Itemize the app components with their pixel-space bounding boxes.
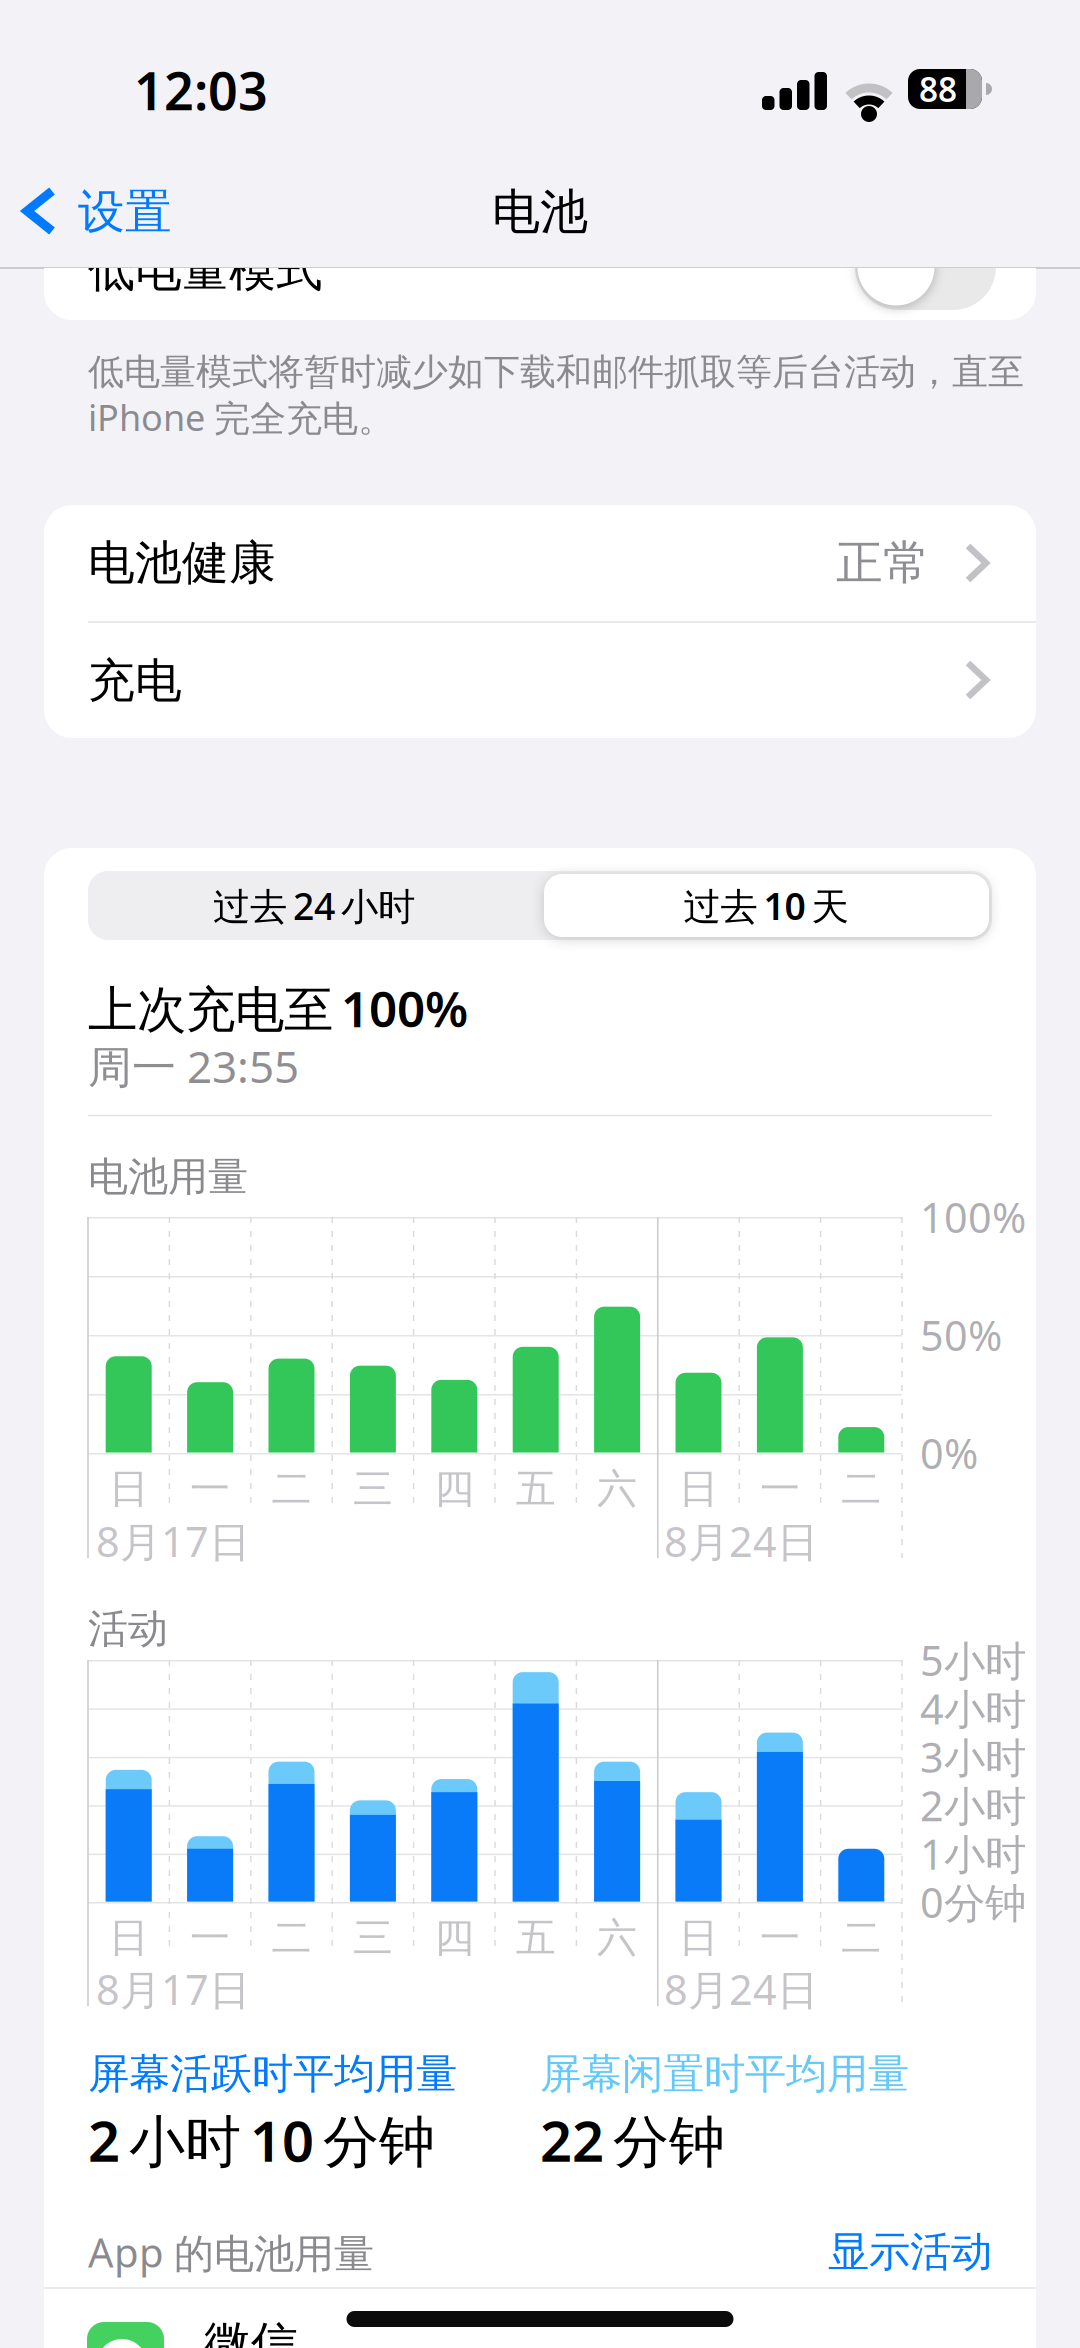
staticText: 电池 (492, 182, 588, 241)
staticText: 低电量模式 (88, 241, 323, 299)
staticText: 四 (434, 1913, 474, 1962)
staticText: 1小时 (920, 1826, 1026, 1881)
staticText: 0分钟 (920, 1875, 1026, 1929)
staticText: 二 (841, 1913, 881, 1962)
staticText: 五 (516, 1464, 556, 1513)
staticText: 3小时 (920, 1729, 1026, 1784)
staticText: 日 (678, 1464, 718, 1513)
staticText: 4小时 (920, 1681, 1026, 1736)
button[interactable]: 充电 (44, 623, 1036, 738)
button[interactable]: 显示活动 (692, 2227, 992, 2277)
staticText: 六 (597, 1464, 637, 1513)
staticText: 88 (919, 67, 957, 111)
staticText: 8月17日 (96, 1962, 250, 2016)
staticText: 过去 10 天 (683, 881, 848, 930)
staticText: 22 分钟 (540, 2103, 725, 2177)
staticText: 8月24日 (664, 1962, 818, 2016)
staticText: 屏幕活跃时平均用量 (88, 2049, 457, 2099)
button[interactable]: 微信 (44, 2288, 1036, 2348)
staticText: 日 (109, 1913, 149, 1962)
staticText: 一 (190, 1913, 230, 1962)
staticText: 一 (760, 1913, 800, 1962)
staticText: 活动 (88, 1604, 168, 1653)
staticText: 一 (760, 1464, 800, 1513)
staticText: 电池用量 (88, 1152, 248, 1201)
staticText: 过去 24 小时 (213, 881, 415, 930)
staticText: 二 (841, 1464, 881, 1513)
staticText: 0% (920, 1426, 978, 1480)
staticText: 一 (190, 1464, 230, 1513)
staticText: 正常 (836, 534, 930, 592)
staticText: 低电量模式将暂时减少如下载和邮件抓取等后台活动，直至 (88, 350, 1024, 394)
button[interactable]: 设置 (0, 166, 260, 256)
staticText: 六 (597, 1913, 637, 1962)
staticText: 2 小时 10 分钟 (88, 2103, 435, 2177)
staticText: 5小时 (920, 1633, 1026, 1687)
button[interactable]: 低电量模式 (855, 224, 996, 310)
staticText: 微信 (204, 2315, 298, 2348)
staticText: 充电 (88, 652, 182, 710)
staticText: 二 (271, 1464, 311, 1513)
staticText: 8月24日 (664, 1514, 818, 1568)
staticText: App 的电池用量 (88, 2225, 374, 2279)
staticText: 三 (353, 1913, 393, 1962)
staticText: 2小时 (920, 1778, 1026, 1833)
staticText: 二 (271, 1913, 311, 1962)
staticText: 100% (920, 1190, 1026, 1244)
button[interactable]: 过去 10 天 (540, 871, 992, 940)
button[interactable]: 电池健康 (44, 505, 1036, 621)
staticText: 四 (434, 1464, 474, 1513)
staticText: 日 (109, 1464, 149, 1513)
staticText: 显示活动 (828, 2227, 992, 2277)
staticText: 12:03 (134, 55, 268, 125)
staticText: 三 (353, 1464, 393, 1513)
button[interactable]: 过去 24 小时 (88, 871, 540, 940)
staticText: iPhone 完全充电。 (88, 393, 394, 441)
staticText: 设置 (78, 183, 172, 241)
staticText: 8月17日 (96, 1514, 250, 1568)
staticText: 五 (516, 1913, 556, 1962)
staticText: 周一 23:55 (88, 1037, 299, 1095)
staticText: 屏幕闲置时平均用量 (540, 2049, 909, 2099)
staticText: 日 (678, 1913, 718, 1962)
staticText: 电池健康 (88, 534, 276, 592)
staticText: 上次充电至 100% (88, 975, 468, 1041)
staticText: 50% (920, 1308, 1002, 1362)
